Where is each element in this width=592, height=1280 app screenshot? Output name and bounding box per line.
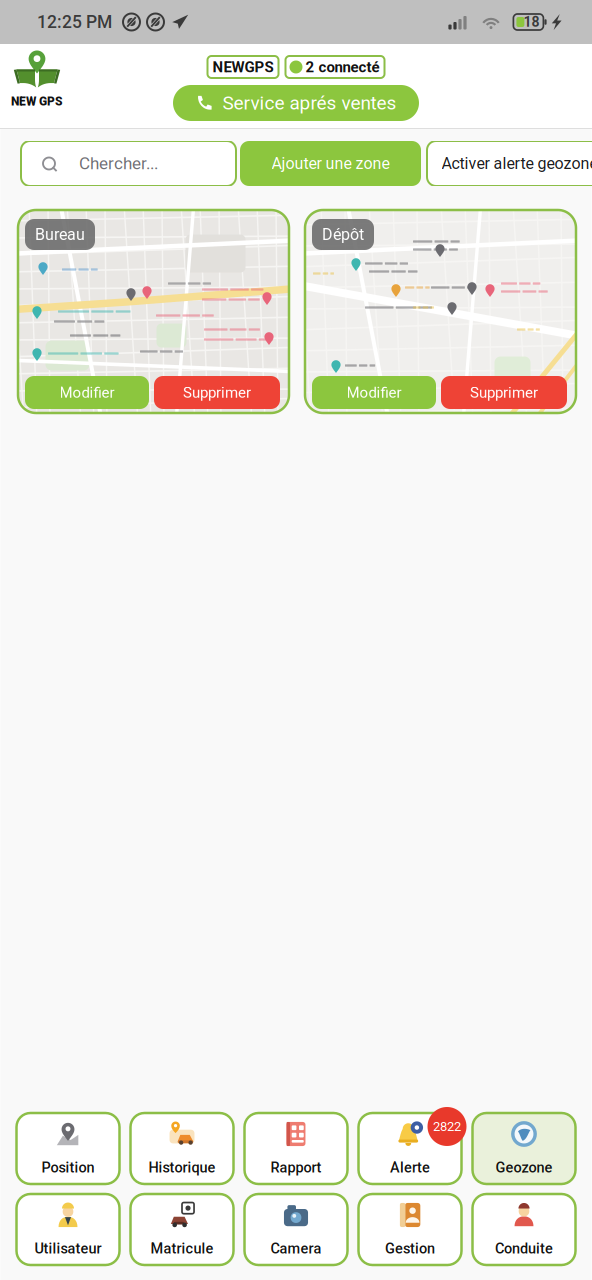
staticText: Bureau xyxy=(35,225,85,244)
button[interactable]: Conduite xyxy=(472,1194,575,1265)
button[interactable]: Chercher... xyxy=(21,141,236,186)
staticText: Camera xyxy=(270,1240,321,1257)
staticText: Ajouter une zone xyxy=(271,154,389,173)
staticText: Modifier xyxy=(59,384,114,401)
staticText: Alerte xyxy=(390,1159,430,1176)
staticText: Rapport xyxy=(270,1159,321,1176)
staticText: Service aprés ventes xyxy=(222,92,396,114)
button[interactable]: Utilisateur xyxy=(16,1194,119,1265)
button[interactable]: Modifier xyxy=(312,376,436,409)
button[interactable]: Modifier xyxy=(25,376,149,409)
button[interactable]: Geozone xyxy=(472,1113,575,1184)
staticText: Supprimer xyxy=(470,384,538,401)
button[interactable]: Gestion xyxy=(358,1194,461,1265)
staticText: Dépôt xyxy=(322,225,364,244)
staticText: 2 connecté xyxy=(305,58,379,76)
staticText: Supprimer xyxy=(183,384,251,401)
staticText: NEWGPS xyxy=(212,58,273,76)
button[interactable]: Activer alerte geozone xyxy=(427,141,592,186)
staticText: Chercher... xyxy=(79,153,158,173)
button[interactable]: Rapport xyxy=(244,1113,347,1184)
button[interactable]: Historique xyxy=(130,1113,233,1184)
staticText: Conduite xyxy=(495,1240,553,1257)
staticText: 12:25 PM xyxy=(37,12,112,32)
staticText: 2822 xyxy=(433,1119,461,1134)
staticText: Gestion xyxy=(385,1240,435,1257)
staticText: Historique xyxy=(148,1159,215,1176)
button[interactable]: Camera xyxy=(244,1194,347,1265)
button[interactable]: Alerte xyxy=(358,1113,461,1184)
staticText: Geozone xyxy=(495,1159,552,1176)
staticText: Matricule xyxy=(150,1240,213,1257)
button[interactable]: Matricule xyxy=(130,1194,233,1265)
button[interactable]: Supprimer xyxy=(154,376,280,409)
button[interactable]: Supprimer xyxy=(441,376,567,409)
staticText: 18 xyxy=(523,14,539,30)
button[interactable]: Position xyxy=(16,1113,119,1184)
staticText: Utilisateur xyxy=(34,1240,101,1257)
staticText: Modifier xyxy=(346,384,401,401)
staticText: NEW GPS xyxy=(11,94,63,109)
button[interactable]: Ajouter une zone xyxy=(240,141,421,186)
staticText: Activer alerte geozone xyxy=(441,154,592,173)
staticText: Position xyxy=(41,1159,94,1176)
button[interactable]: Service aprés ventes xyxy=(173,85,419,121)
